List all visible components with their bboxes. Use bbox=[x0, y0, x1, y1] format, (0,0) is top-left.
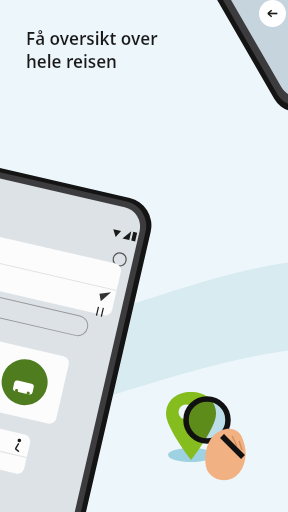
button[interactable]: Tilbake bbox=[259, 0, 286, 27]
staticText: Få oversikt over hele reisen bbox=[26, 27, 158, 73]
